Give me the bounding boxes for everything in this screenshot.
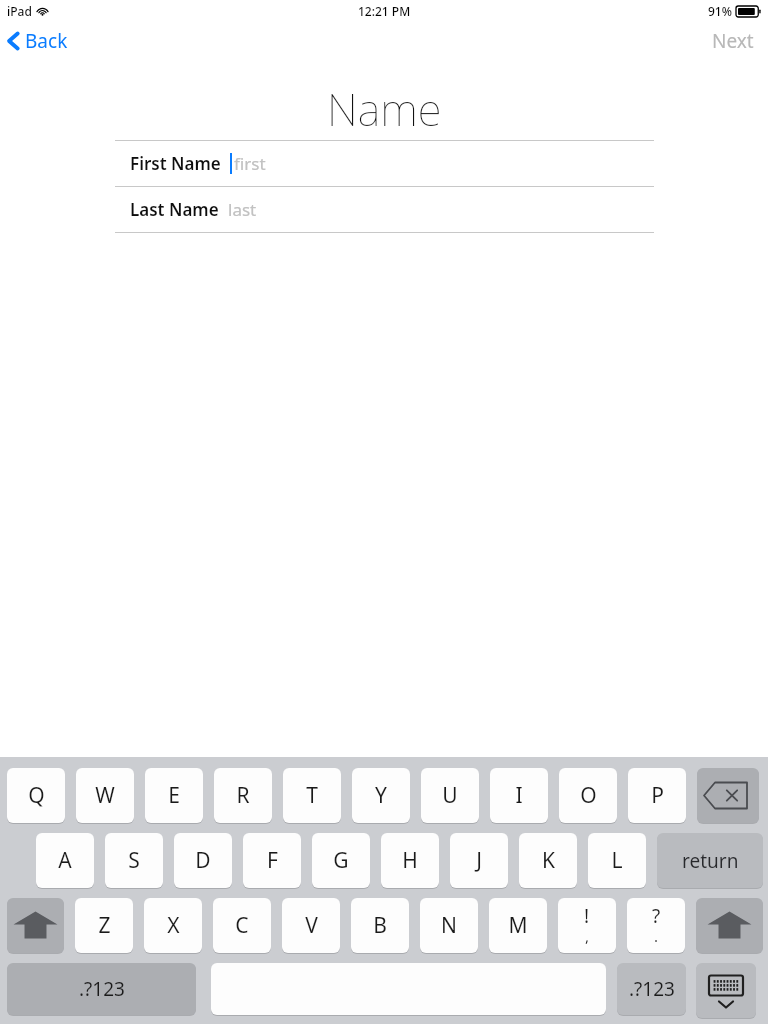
button[interactable]: H (381, 833, 439, 888)
button[interactable]: O (559, 768, 617, 823)
staticText: M (508, 911, 528, 940)
staticText: , (585, 926, 590, 946)
staticText: Next (712, 28, 754, 54)
button[interactable]: ? (627, 898, 685, 953)
button[interactable]: Last Name (115, 187, 654, 232)
staticText: return (682, 848, 739, 874)
staticText: first (234, 152, 266, 175)
staticText: L (611, 846, 623, 875)
staticText: Last Name (130, 198, 219, 221)
button[interactable]: A (36, 833, 94, 888)
staticText: 12:21 PM (358, 3, 411, 19)
staticText: Z (98, 911, 111, 940)
staticText: I (515, 781, 523, 810)
button[interactable]: Z (75, 898, 133, 953)
button[interactable]: L (588, 833, 646, 888)
button[interactable]: D (174, 833, 232, 888)
button[interactable]: N (420, 898, 478, 953)
staticText: .?123 (79, 976, 125, 1002)
staticText: E (168, 781, 180, 810)
staticText: Name (327, 79, 442, 139)
button[interactable]: .?123 (617, 963, 686, 1015)
button[interactable]: V (282, 898, 340, 953)
staticText: Back (25, 28, 68, 54)
staticText: A (58, 846, 72, 875)
staticText: N (441, 911, 457, 940)
button[interactable]: return (657, 833, 763, 888)
button[interactable]: ! (558, 898, 616, 953)
staticText: T (306, 781, 318, 810)
staticText: O (580, 781, 597, 810)
staticText: X (167, 911, 180, 940)
button[interactable]: I (490, 768, 548, 823)
button[interactable]: Q (7, 768, 65, 823)
staticText: last (228, 198, 257, 221)
button[interactable]: Shift (7, 898, 64, 953)
staticText: V (305, 911, 318, 940)
button[interactable]: E (145, 768, 203, 823)
button[interactable]: R (214, 768, 272, 823)
staticText: R (236, 781, 250, 810)
button[interactable]: F (243, 833, 301, 888)
button[interactable]: J (450, 833, 508, 888)
button[interactable]: Back (0, 24, 78, 58)
staticText: H (402, 846, 418, 875)
staticText: First Name (130, 152, 221, 175)
staticText: P (651, 781, 664, 810)
staticText: F (267, 846, 278, 875)
button[interactable]: P (628, 768, 686, 823)
staticText: 91% (708, 3, 732, 19)
staticText: D (195, 846, 211, 875)
button[interactable]: B (351, 898, 409, 953)
button[interactable]: G (312, 833, 370, 888)
button[interactable]: Shift (696, 898, 763, 953)
staticText: .?123 (629, 976, 675, 1002)
button[interactable]: W (76, 768, 134, 823)
staticText: iPad (7, 3, 32, 19)
button[interactable]: X (144, 898, 202, 953)
staticText: C (235, 911, 249, 940)
staticText: Q (28, 781, 45, 810)
staticText: U (442, 781, 458, 810)
staticText: S (128, 846, 140, 875)
button[interactable]: U (421, 768, 479, 823)
staticText: ? (652, 903, 661, 929)
button[interactable]: .?123 (7, 963, 196, 1015)
staticText: B (373, 911, 387, 940)
staticText: K (542, 846, 555, 875)
button[interactable]: Hide keyboard (696, 963, 756, 1018)
staticText: G (333, 846, 349, 875)
staticText: ! (584, 903, 590, 929)
button[interactable]: C (213, 898, 271, 953)
button[interactable]: Delete (697, 768, 759, 823)
button[interactable]: Y (352, 768, 410, 823)
button[interactable]: S (105, 833, 163, 888)
button[interactable]: Next (698, 23, 768, 59)
staticText: . (654, 926, 659, 946)
staticText: Y (375, 781, 387, 810)
button[interactable]: First Name (115, 141, 654, 186)
button[interactable]: T (283, 768, 341, 823)
button[interactable]: K (519, 833, 577, 888)
staticText: J (476, 846, 482, 875)
staticText: W (95, 781, 115, 810)
button[interactable]: M (489, 898, 547, 953)
